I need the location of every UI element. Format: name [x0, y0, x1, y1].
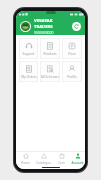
staticText: Products	[43, 52, 57, 56]
staticText: All Schemes	[41, 75, 59, 79]
staticText: Profile	[67, 75, 77, 79]
staticText: My Orders	[21, 75, 37, 79]
button[interactable]: Profile	[62, 61, 82, 82]
staticText: Account	[71, 161, 84, 165]
button[interactable]: Refresh	[72, 22, 81, 31]
staticText: Support	[22, 52, 35, 56]
button[interactable]: Catalogue	[34, 151, 52, 166]
staticText: Catalogue	[36, 161, 51, 165]
button[interactable]: All Schemes	[40, 61, 60, 82]
staticText: Home	[21, 161, 30, 165]
staticText: 9000000000	[34, 30, 54, 35]
button[interactable]: Profile avatar	[20, 21, 31, 32]
button[interactable]: Support	[19, 38, 38, 59]
button[interactable]: My Orders	[19, 61, 38, 82]
staticText: VINAYAK TRADERS	[34, 18, 72, 29]
button[interactable]: Account	[70, 151, 85, 166]
button[interactable]: Price	[62, 38, 82, 59]
staticText: Price	[68, 52, 76, 56]
button[interactable]: Products	[40, 38, 60, 59]
staticText: Cart	[58, 161, 65, 165]
button[interactable]: Home	[16, 151, 34, 166]
button[interactable]: Cart	[52, 151, 70, 166]
